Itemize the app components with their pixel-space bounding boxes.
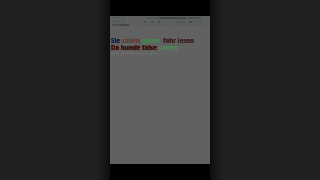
staticText: Da hunde false bauen — [111, 43, 178, 51]
staticText: Da hunde false bauen — [111, 43, 178, 51]
staticText: Da hunde false bauen — [111, 43, 178, 51]
staticText: Sie sollen guten fahr lesen — [111, 36, 194, 44]
staticText: Da hunde false bauen — [111, 43, 178, 51]
staticText: unit werden sind alle — [111, 50, 158, 56]
staticText: Sie sollen guten fahr lesen — [111, 36, 194, 44]
staticText: Sie sollen guten fahr lesen — [111, 36, 194, 44]
